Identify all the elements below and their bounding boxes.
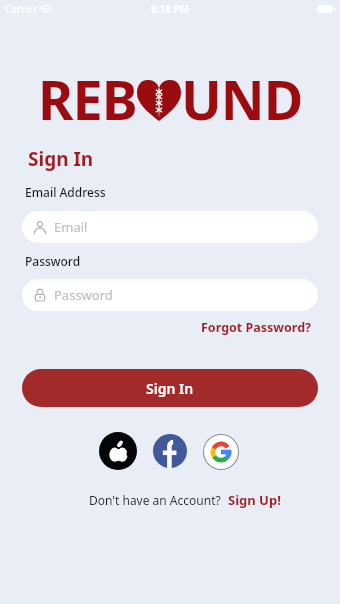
button[interactable]: Email <box>22 211 318 243</box>
staticText: Carrier <box>5 2 38 16</box>
staticText: Sign In <box>28 146 94 172</box>
staticText: Sign In <box>146 379 194 398</box>
button[interactable] <box>99 432 137 470</box>
staticText: Email Address <box>25 184 106 200</box>
staticText: Don't have an Account? <box>89 492 221 508</box>
button[interactable]: Sign In <box>22 369 318 407</box>
staticText: Password <box>54 286 113 304</box>
staticText: Password <box>25 253 81 269</box>
button[interactable] <box>153 434 187 468</box>
staticText: Email <box>54 218 88 236</box>
staticText: REB <box>38 62 137 136</box>
button[interactable]: Password <box>22 279 318 311</box>
staticText: 8:18 PM <box>0 2 340 16</box>
button[interactable]: Forgot Password? <box>201 319 312 336</box>
button[interactable]: Sign Up! <box>228 491 281 509</box>
staticText: UND <box>181 62 303 136</box>
button[interactable] <box>204 435 238 469</box>
